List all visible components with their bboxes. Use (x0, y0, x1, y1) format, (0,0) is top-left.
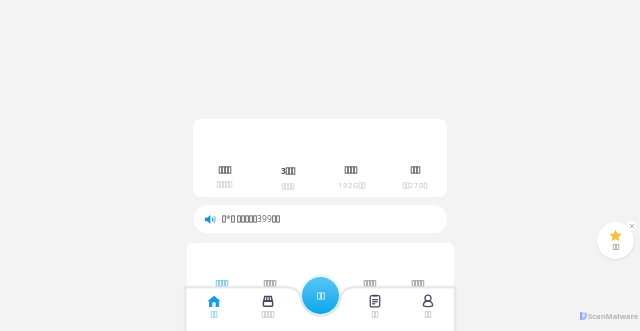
staticText: 2 (409, 180, 414, 190)
staticText: 9 (267, 213, 272, 225)
staticText: 7 (414, 180, 419, 190)
button[interactable] (401, 294, 454, 324)
button[interactable]: Favourites (597, 222, 634, 259)
button[interactable] (364, 279, 376, 288)
staticText: 2 (348, 180, 353, 190)
button[interactable] (216, 279, 228, 288)
button[interactable]: * (194, 205, 447, 233)
staticText: 3 (281, 165, 286, 177)
button[interactable] (241, 294, 295, 324)
button[interactable]: 2 (383, 165, 447, 190)
button[interactable] (412, 279, 424, 288)
button[interactable] (187, 294, 241, 324)
button[interactable] (348, 294, 401, 324)
button[interactable] (193, 165, 256, 189)
staticText: 9 (262, 213, 267, 225)
button[interactable] (264, 279, 276, 288)
staticText: 1 (338, 180, 343, 190)
staticText: ScanMalware (588, 311, 639, 321)
staticText: 3 (257, 213, 262, 225)
button[interactable]: 3 (256, 165, 319, 191)
staticText: * (226, 213, 231, 225)
staticText: 9 (343, 180, 348, 190)
button[interactable]: Publish (302, 277, 339, 314)
button[interactable]: 1 (319, 165, 383, 190)
button[interactable]: Close (627, 221, 636, 230)
staticText: G (353, 180, 359, 190)
staticText: 0 (419, 180, 424, 190)
